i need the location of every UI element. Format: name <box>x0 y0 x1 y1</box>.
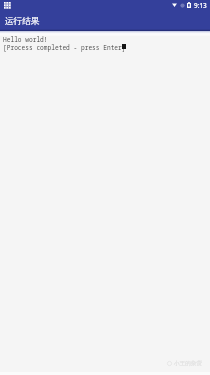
button[interactable]: Hello world! <box>0 36 210 375</box>
staticText: 小王的杂货 <box>174 360 202 367</box>
other: Notification <box>4 2 11 9</box>
staticText: 9:13 <box>194 1 207 10</box>
other: Mobile data off <box>180 3 185 8</box>
button[interactable]: 运行结果 <box>0 10 40 31</box>
staticText: Hello world! <box>3 36 48 43</box>
other: Wi-Fi <box>172 3 177 7</box>
other: Battery <box>187 2 191 8</box>
staticText: [Process completed - press Enter] <box>3 43 130 51</box>
staticText: 运行结果 <box>5 16 40 27</box>
